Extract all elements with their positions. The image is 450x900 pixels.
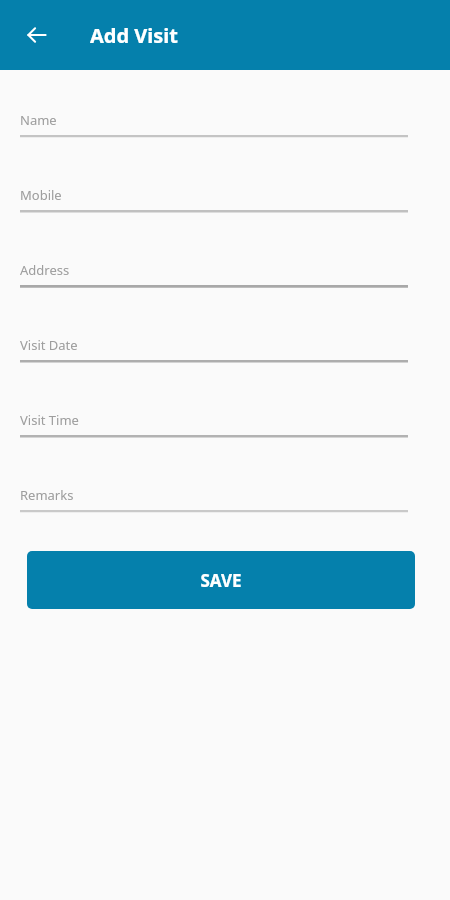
staticText: Add Visit (90, 22, 178, 49)
staticText: Remarks (20, 486, 74, 504)
button[interactable]: SAVE (27, 551, 415, 609)
staticText: Visit Date (20, 336, 78, 354)
staticText: Visit Time (20, 411, 79, 429)
staticText: Address (20, 261, 70, 279)
button[interactable]: Visit Time (20, 411, 408, 438)
button[interactable]: Back (13, 11, 61, 59)
button[interactable]: Name (20, 111, 408, 138)
button[interactable]: Address (20, 261, 408, 288)
staticText: SAVE (200, 569, 242, 592)
staticText: Mobile (20, 186, 62, 204)
button[interactable]: Mobile (20, 186, 408, 213)
button[interactable]: Visit Date (20, 336, 408, 363)
staticText: Name (20, 111, 57, 129)
button[interactable]: Remarks (20, 486, 408, 513)
